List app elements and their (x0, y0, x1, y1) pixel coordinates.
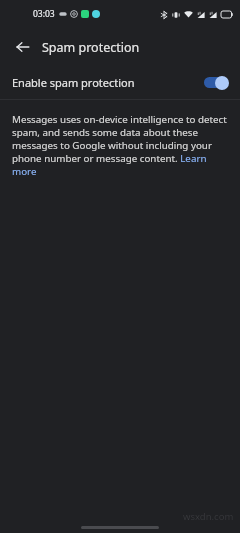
staticText: Spam protection (42, 39, 140, 56)
staticText: wsxdn.com (183, 510, 234, 523)
staticText: Enable spam protection (12, 75, 203, 90)
button[interactable]: Enable spam protection (0, 66, 240, 99)
button[interactable]: Back (10, 34, 36, 60)
button[interactable]: Enable spam protection toggle (203, 75, 229, 90)
button[interactable]: Messages uses on-device intelligence to … (12, 113, 228, 178)
staticText: Messages uses on-device intelligence to … (12, 113, 228, 178)
staticText: 03:03 (33, 8, 55, 20)
